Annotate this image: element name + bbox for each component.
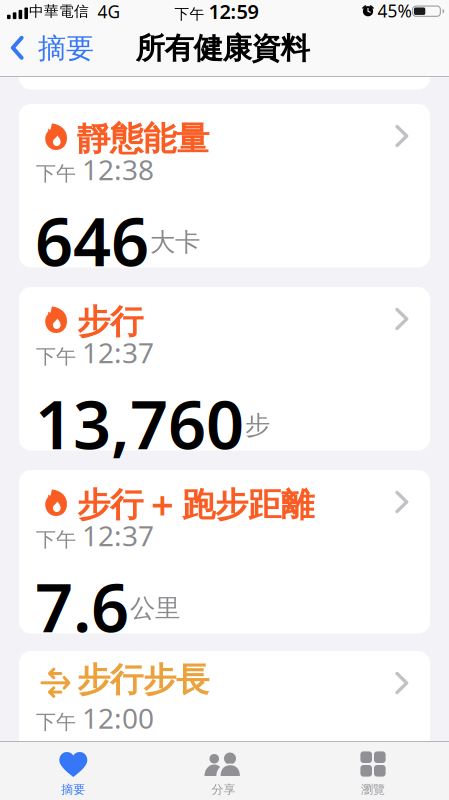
staticText: 跑步距離 [182, 484, 314, 525]
button[interactable]: 返回摘要 [0, 24, 110, 77]
staticText: + [151, 477, 174, 530]
button[interactable]: 摘要 [0, 741, 149, 800]
staticText: 45% [377, 0, 411, 22]
staticText: 646 [35, 196, 149, 285]
staticText: 步行步長 [77, 659, 209, 700]
staticText: 12:37 [82, 517, 154, 554]
staticText: 摘要 [38, 31, 94, 66]
staticText: 分享 [211, 782, 235, 797]
staticText: 12:59 [208, 0, 258, 24]
staticText: 所有健康資料 [135, 31, 309, 67]
staticText: 12:38 [82, 151, 154, 188]
staticText: 7.6 [35, 562, 129, 651]
staticText: 4G [97, 0, 120, 23]
staticText: 下午 [36, 344, 76, 369]
staticText: 步行 [77, 484, 143, 525]
staticText: 12:00 [82, 699, 154, 737]
staticText: 12:37 [82, 334, 154, 371]
staticText: 公里 [130, 593, 180, 624]
staticText: 下午 [36, 527, 76, 552]
staticText: 下午 [36, 161, 76, 186]
staticText: 靜態能量 [77, 118, 209, 159]
staticText: 中華電信 [29, 2, 89, 20]
button[interactable]: 瀏覽 [298, 741, 449, 800]
button[interactable]: 步行 [19, 287, 430, 450]
staticText: 摘要 [61, 782, 85, 797]
staticText: 大卡 [150, 227, 200, 258]
button[interactable]: 分享 [149, 741, 298, 800]
staticText: 13,760 [35, 379, 244, 468]
staticText: 瀏覽 [361, 782, 385, 797]
button[interactable]: 靜態能量 [19, 104, 430, 267]
button[interactable]: 步行 [19, 470, 430, 633]
staticText: 下午 [174, 5, 204, 23]
staticText: 步 [245, 410, 270, 441]
staticText: 下午 [36, 710, 76, 734]
staticText: 步行 [77, 301, 143, 342]
button[interactable]: 步行步長 [19, 651, 430, 800]
